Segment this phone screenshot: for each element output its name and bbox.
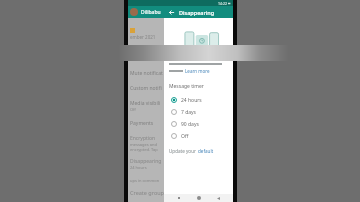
staticText: Mute notificat	[130, 70, 163, 77]
staticText: encrypted. Tap	[130, 147, 158, 152]
staticText: messages and	[130, 142, 157, 147]
staticText: Off	[130, 107, 136, 112]
staticText: Encryption	[130, 135, 156, 142]
staticText: Media visibili	[130, 100, 161, 107]
staticText: Learn more	[185, 68, 210, 74]
staticText: 24 hours	[130, 165, 147, 170]
staticText: default message timer	[198, 148, 233, 154]
button[interactable]: Back	[167, 8, 176, 17]
button[interactable]: Home	[195, 194, 203, 202]
staticText: Custom notifi	[130, 85, 162, 92]
staticText: 24 hours	[181, 97, 202, 104]
button[interactable]: Media visibili	[128, 96, 164, 116]
staticText: ember 2021	[130, 34, 156, 40]
staticText: Disappearing	[130, 158, 162, 165]
button[interactable]: Recents	[175, 194, 183, 202]
button[interactable]: Back	[214, 194, 222, 202]
button[interactable]: 7 days	[164, 106, 233, 118]
button[interactable]: 90 days	[164, 118, 233, 130]
button[interactable]: Custom notifi	[128, 81, 164, 96]
staticText: Dilibabu	[141, 9, 161, 16]
staticText: Payments	[130, 120, 154, 127]
button[interactable]: Mute notificat	[128, 66, 164, 81]
staticText: Disappearing messages	[179, 9, 233, 16]
button[interactable]: Update your	[164, 146, 233, 156]
staticText: 14:22	[218, 1, 227, 6]
staticText: Update your	[169, 148, 198, 154]
staticText: 7 days	[181, 109, 196, 116]
staticText: 90 days	[181, 121, 199, 128]
staticText: Create group	[130, 189, 164, 196]
button[interactable]: Payments	[128, 116, 164, 131]
button[interactable]: 24 hours	[164, 94, 233, 106]
staticText: ups in common	[130, 178, 160, 183]
button[interactable]: Off	[164, 130, 233, 142]
staticText: Off	[181, 133, 189, 140]
staticText: Message timer	[169, 83, 204, 90]
